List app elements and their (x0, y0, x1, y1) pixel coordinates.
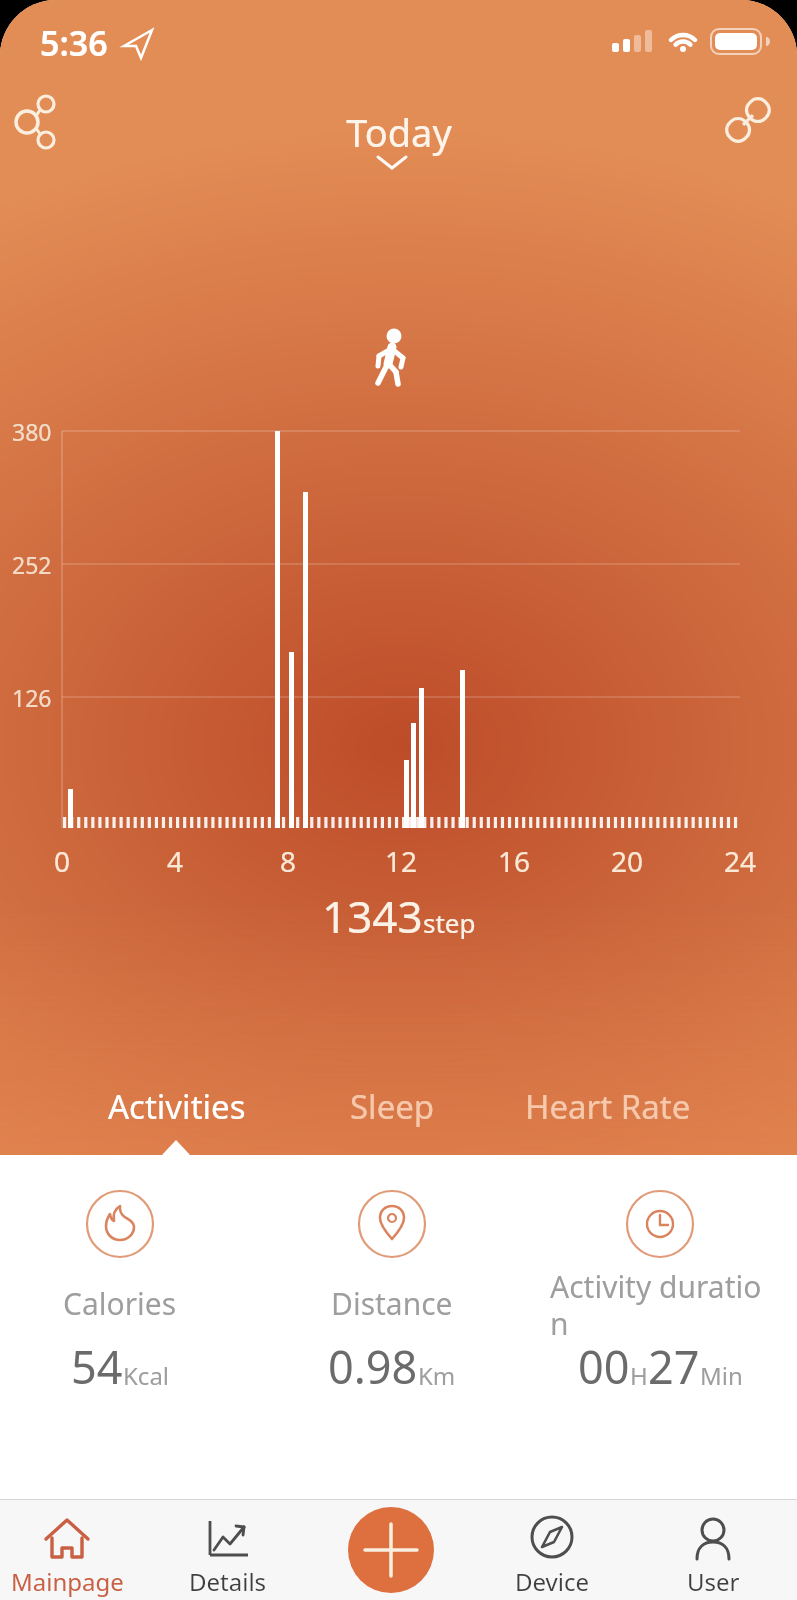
staticText: 0 (54, 842, 71, 880)
staticText: 126 (12, 682, 52, 713)
staticText: Km (418, 1359, 456, 1392)
staticText: 27 (648, 1336, 700, 1397)
staticText: 5:36 (40, 20, 108, 66)
staticText: 1343 (322, 886, 423, 946)
staticText: 380 (12, 416, 52, 447)
staticText: User (687, 1565, 740, 1598)
button[interactable]: Details (158, 1505, 298, 1600)
staticText: H (630, 1359, 648, 1392)
staticText: Activities (108, 1084, 246, 1129)
staticText: Calories (63, 1283, 177, 1324)
staticText: Device (515, 1565, 590, 1598)
staticText: 24 (724, 842, 757, 880)
button[interactable]: Heart Rate (500, 1083, 715, 1129)
button[interactable]: Sleep (285, 1083, 500, 1129)
button[interactable]: Today (0, 106, 797, 158)
button[interactable]: User (643, 1505, 783, 1600)
button[interactable]: Mainpage (0, 1505, 137, 1600)
staticText: Today (346, 106, 452, 158)
staticText: Sleep (350, 1084, 435, 1129)
staticText: 20 (611, 842, 644, 880)
button[interactable]: Activities (69, 1083, 285, 1129)
staticText: 00 (578, 1336, 630, 1397)
button[interactable] (720, 95, 780, 155)
staticText: 54 (71, 1336, 123, 1397)
staticText: 16 (498, 842, 531, 880)
button[interactable]: Device (482, 1505, 622, 1600)
staticText: Heart Rate (525, 1084, 691, 1129)
button[interactable] (359, 1191, 425, 1257)
staticText: Kcal (123, 1359, 170, 1392)
button[interactable] (627, 1191, 693, 1257)
staticText: Distance (331, 1283, 453, 1324)
staticText: Activity duratio n (550, 1266, 762, 1344)
button[interactable] (348, 1507, 434, 1593)
button[interactable] (10, 95, 66, 151)
staticText: 0.98 (328, 1336, 418, 1397)
staticText: step (423, 905, 476, 940)
staticText: Min (700, 1359, 743, 1392)
staticText: 252 (12, 549, 52, 580)
staticText: 4 (167, 842, 184, 880)
staticText: 8 (280, 842, 297, 880)
staticText: 12 (385, 842, 418, 880)
button[interactable] (87, 1191, 153, 1257)
staticText: Details (189, 1565, 267, 1598)
staticText: Mainpage (11, 1565, 124, 1598)
